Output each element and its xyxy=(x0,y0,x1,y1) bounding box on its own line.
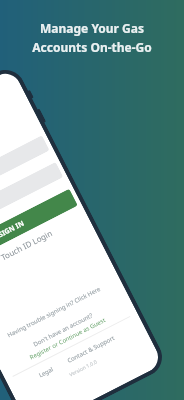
button[interactable] xyxy=(0,162,63,241)
button[interactable]: Touch ID xyxy=(0,227,54,268)
staticText: Manage Your Gas xyxy=(40,20,144,36)
button[interactable]: Legal xyxy=(37,365,55,379)
button[interactable] xyxy=(0,135,50,214)
staticText: Register or Continue as Guest xyxy=(28,316,107,362)
staticText: Touch ID Login xyxy=(0,227,55,263)
staticText: Don't have an account? xyxy=(32,311,94,349)
button[interactable]: SIGN IN xyxy=(0,189,78,269)
staticText: Accounts On-the-Go xyxy=(32,39,152,55)
staticText: Version 1.0.0 xyxy=(68,358,99,379)
staticText: SIGN IN xyxy=(0,219,26,240)
staticText: Having trouble signing in? Click Here xyxy=(6,285,102,339)
button[interactable]: Contact & Support xyxy=(66,334,116,365)
